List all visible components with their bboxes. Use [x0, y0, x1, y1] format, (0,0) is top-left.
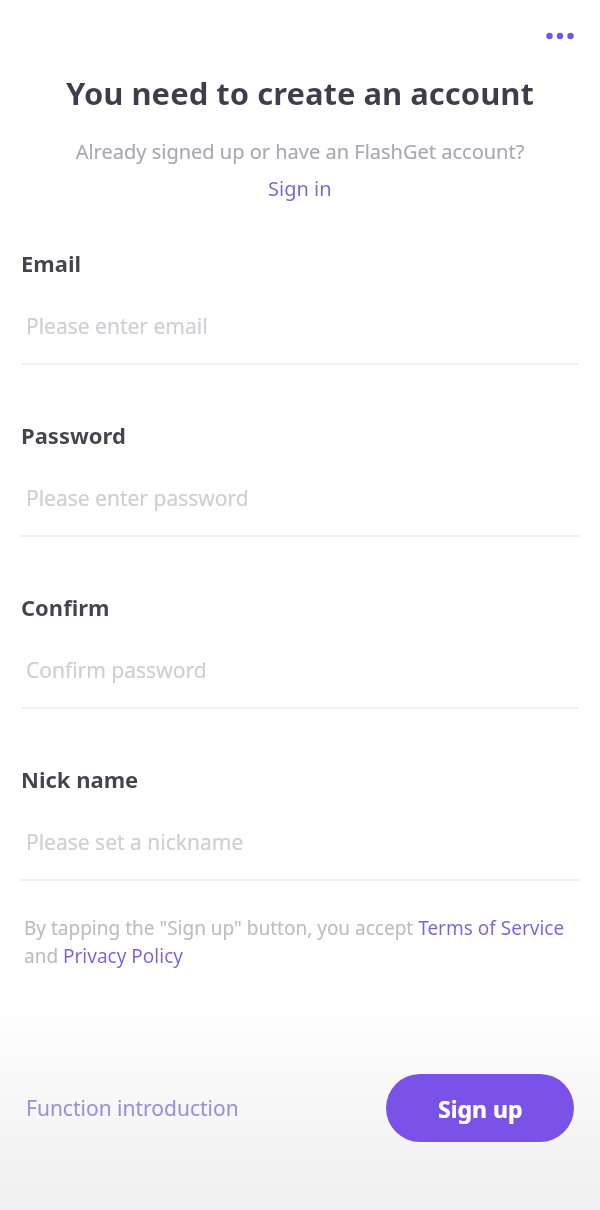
button[interactable]: Function introduction	[22, 1084, 243, 1133]
button[interactable]: Sign in	[260, 173, 340, 204]
staticText: Please enter password	[26, 484, 249, 513]
staticText: You need to create an account	[20, 72, 580, 114]
staticText: By tapping the "Sign up" button, you acc…	[24, 915, 579, 969]
staticText: Email	[21, 248, 82, 278]
staticText: Confirm	[21, 592, 110, 622]
button[interactable]: More options	[536, 12, 584, 60]
button[interactable]: Email	[21, 248, 579, 365]
button[interactable]: Nick name	[21, 764, 579, 881]
staticText: Please enter email	[26, 312, 208, 341]
button[interactable]: Confirm	[21, 592, 579, 709]
button[interactable]: Password	[21, 420, 579, 537]
staticText: Please set a nickname	[26, 828, 244, 857]
staticText: Sign in	[268, 175, 332, 202]
staticText: Password	[21, 420, 126, 450]
staticText: Sign up	[438, 1093, 523, 1124]
staticText: Confirm password	[26, 656, 207, 685]
staticText: Nick name	[21, 764, 139, 794]
staticText: Function introduction	[26, 1094, 239, 1123]
staticText: Already signed up or have an FlashGet ac…	[16, 138, 584, 165]
button[interactable]: By tapping the "Sign up" button, you acc…	[21, 915, 579, 969]
button[interactable]: Sign up	[386, 1074, 574, 1142]
